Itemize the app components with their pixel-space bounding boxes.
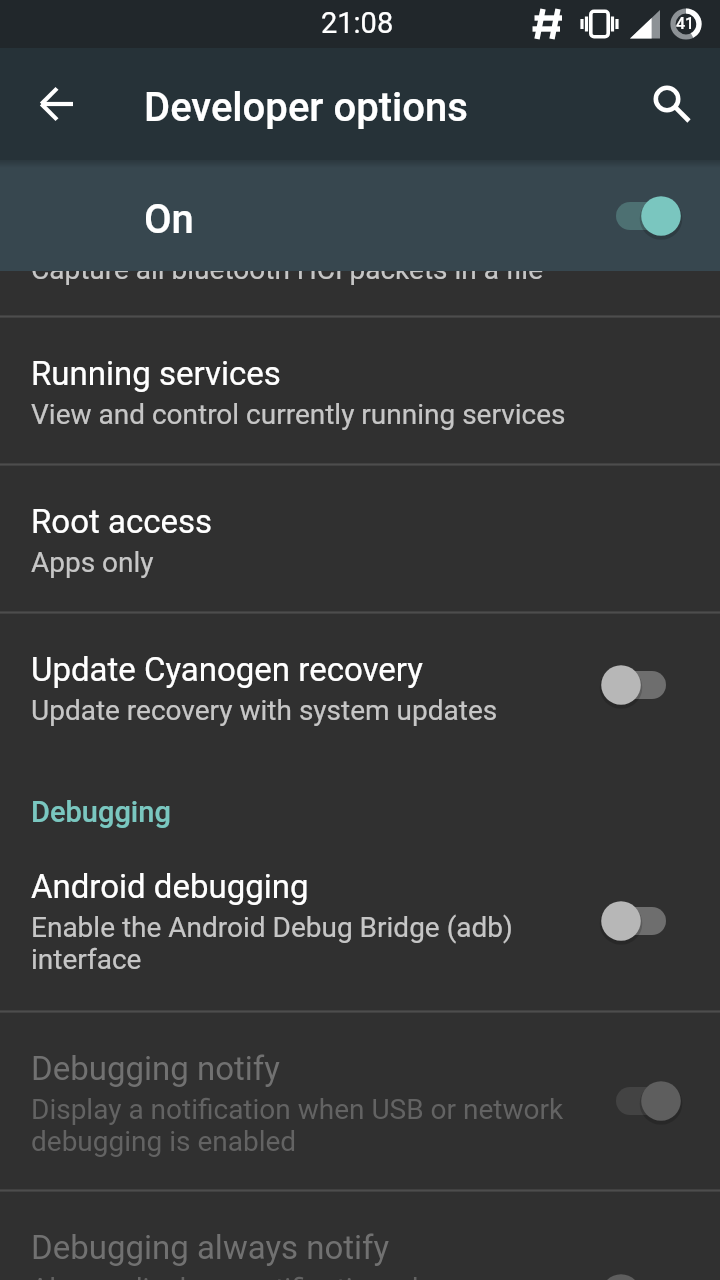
staticText: Display a notification when USB or netwo… — [31, 1093, 564, 1157]
button[interactable]: Running services — [0, 317, 720, 464]
staticText: Developer options — [144, 84, 468, 131]
staticText: Apps only — [31, 546, 154, 578]
staticText: Debugging always notify — [31, 1228, 390, 1267]
staticText: View and control currently running servi… — [31, 398, 566, 430]
button[interactable]: Android debugging — [0, 830, 720, 1011]
staticText: Root access — [31, 502, 213, 541]
button[interactable]: Capture all bluetooth HCI packets in a f… — [0, 271, 720, 316]
staticText: Android debugging — [31, 867, 309, 906]
staticText: Update Cyanogen recovery — [31, 650, 423, 689]
staticText: Capture all bluetooth HCI packets in a f… — [31, 271, 544, 286]
button[interactable]: Debugging always notify — [0, 1191, 720, 1280]
staticText: 21:08 — [321, 6, 394, 40]
staticText: On — [144, 196, 194, 243]
button[interactable]: Update Cyanogen recovery — [0, 613, 720, 760]
button[interactable]: Root access — [0, 465, 720, 612]
staticText: Enable the Android Debug Bridge (adb) in… — [31, 911, 513, 975]
button[interactable]: Navigate up — [17, 64, 97, 144]
button[interactable]: On — [0, 160, 720, 271]
button[interactable]: Debugging notify — [0, 1012, 720, 1190]
button[interactable]: Search — [634, 64, 714, 144]
staticText: Debugging — [31, 795, 171, 829]
staticText: Debugging notify — [31, 1049, 280, 1088]
staticText: Always display a notification when debug… — [31, 1272, 458, 1280]
staticText: Running services — [31, 354, 281, 393]
staticText: 41 — [676, 14, 695, 33]
staticText: Update recovery with system updates — [31, 694, 498, 726]
